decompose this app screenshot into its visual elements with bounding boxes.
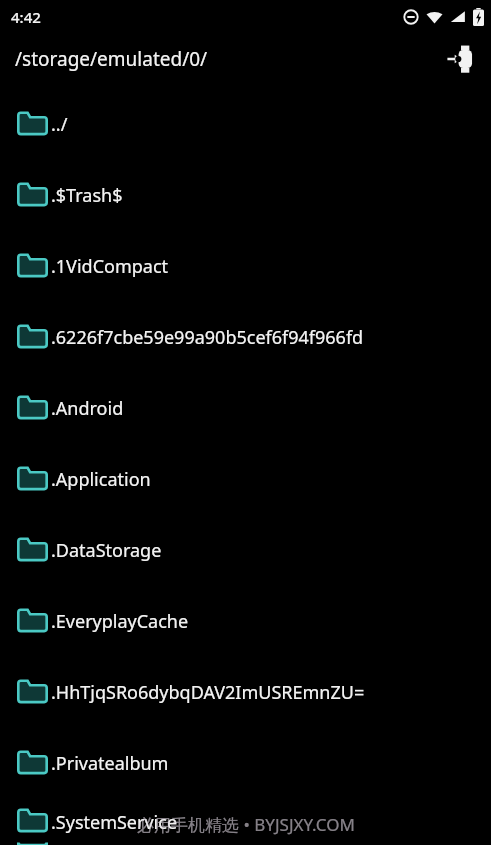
staticText: .Privatealbum <box>51 751 169 776</box>
staticText: .SystemService <box>51 810 178 835</box>
button[interactable]: .Privatealbum <box>0 728 491 799</box>
staticText: .1VidCompact <box>51 254 169 279</box>
button[interactable]: .$Trash$ <box>0 160 491 231</box>
staticText: .6226f7cbe59e99a90b5cef6f94f966fd <box>51 325 364 350</box>
button[interactable]: .6226f7cbe59e99a90b5cef6f94f966fd <box>0 302 491 373</box>
button[interactable]: .HhTjqSRo6dybqDAV2ImUSREmnZU= <box>0 657 491 728</box>
button[interactable]: .SystemService <box>0 799 491 845</box>
button[interactable]: Open on watch <box>439 38 481 80</box>
staticText: .Application <box>51 467 151 492</box>
button[interactable]: .DataStorage <box>0 515 491 586</box>
staticText: .Android <box>51 396 124 421</box>
button[interactable]: .Android <box>0 373 491 444</box>
staticText: .$Trash$ <box>51 183 123 208</box>
button[interactable]: .Application <box>0 444 491 515</box>
staticText: 4:42 <box>11 7 41 27</box>
staticText: .HhTjqSRo6dybqDAV2ImUSREmnZU= <box>51 680 365 705</box>
staticText: .EveryplayCache <box>51 609 189 634</box>
staticText: ../ <box>51 112 68 137</box>
button[interactable]: ../ <box>0 89 491 160</box>
button[interactable]: .1VidCompact <box>0 231 491 302</box>
staticText: /storage/emulated/0/ <box>15 46 208 72</box>
staticText: 必用手机精选 • BYJSJXY.COM <box>137 813 355 836</box>
button[interactable]: .EveryplayCache <box>0 586 491 657</box>
staticText: .DataStorage <box>51 538 162 563</box>
